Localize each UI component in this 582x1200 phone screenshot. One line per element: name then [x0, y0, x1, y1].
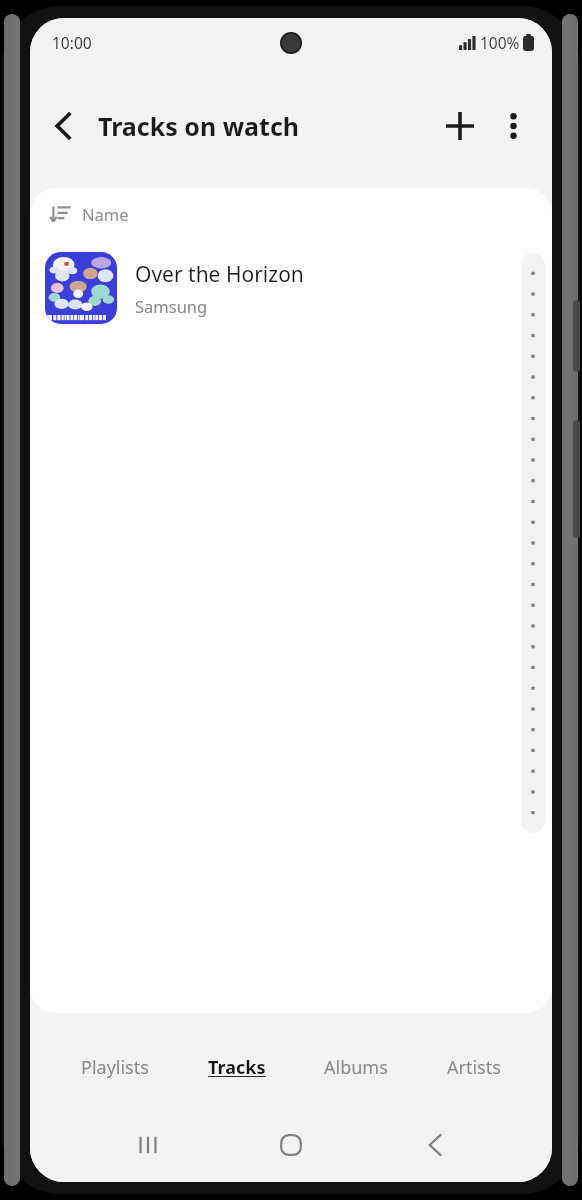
- button[interactable]: Back: [38, 101, 88, 151]
- staticText: 10:00: [52, 32, 92, 53]
- staticText: Albums: [324, 1055, 388, 1080]
- button[interactable]: Albums: [316, 1049, 396, 1086]
- button[interactable]: Index scrollbar: [521, 253, 545, 833]
- button[interactable]: Artists: [439, 1049, 509, 1086]
- staticText: Tracks on watch: [98, 109, 300, 143]
- button[interactable]: Over the Horizon: [30, 240, 552, 336]
- button[interactable]: Playlists: [73, 1049, 157, 1086]
- staticText: 100%: [480, 32, 520, 53]
- button[interactable]: Back: [409, 1119, 461, 1171]
- staticText: Tracks: [208, 1055, 266, 1080]
- button[interactable]: Home: [265, 1119, 317, 1171]
- button[interactable]: More options: [488, 101, 538, 151]
- staticText: Over the Horizon: [135, 260, 304, 289]
- button[interactable]: Add: [434, 100, 486, 152]
- button[interactable]: Tracks: [200, 1049, 274, 1086]
- staticText: Playlists: [81, 1055, 149, 1080]
- staticText: Name: [82, 203, 129, 225]
- staticText: Samsung: [135, 295, 208, 317]
- button[interactable]: Recent apps: [122, 1119, 174, 1171]
- staticText: Artists: [447, 1055, 501, 1080]
- button[interactable]: Name: [30, 188, 552, 240]
